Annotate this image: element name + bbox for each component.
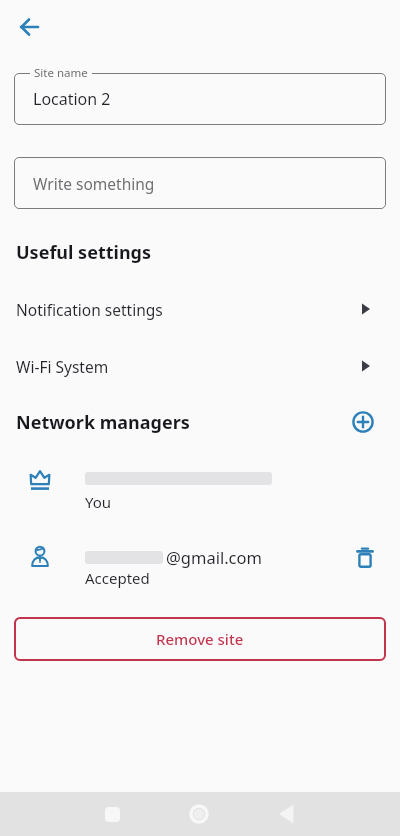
button[interactable] [274,792,302,836]
staticText: Accepted [85,568,150,588]
button[interactable]: Wi-Fi System [0,342,400,390]
staticText: Wi-Fi System [16,356,109,377]
button[interactable]: Write something [14,157,386,209]
staticText: Remove site [156,629,244,649]
button[interactable] [16,14,42,40]
staticText: You [85,492,112,512]
staticText: Write something [33,173,155,194]
button[interactable] [98,792,126,836]
staticText: Site name [34,65,88,81]
button[interactable]: Location 2 [14,73,386,125]
button[interactable] [349,408,377,436]
button[interactable]: Notification settings [0,285,400,333]
button[interactable] [185,792,213,836]
button[interactable] [352,545,378,571]
staticText: Network managers [16,410,190,435]
button[interactable]: You [28,468,400,512]
staticText: @gmail.com [166,546,262,568]
staticText: Location 2 [33,88,111,110]
button[interactable]: Remove site [14,617,386,661]
button[interactable]: @gmail.com [28,545,378,588]
staticText: Useful settings [16,240,151,265]
staticText: Notification settings [16,299,163,320]
